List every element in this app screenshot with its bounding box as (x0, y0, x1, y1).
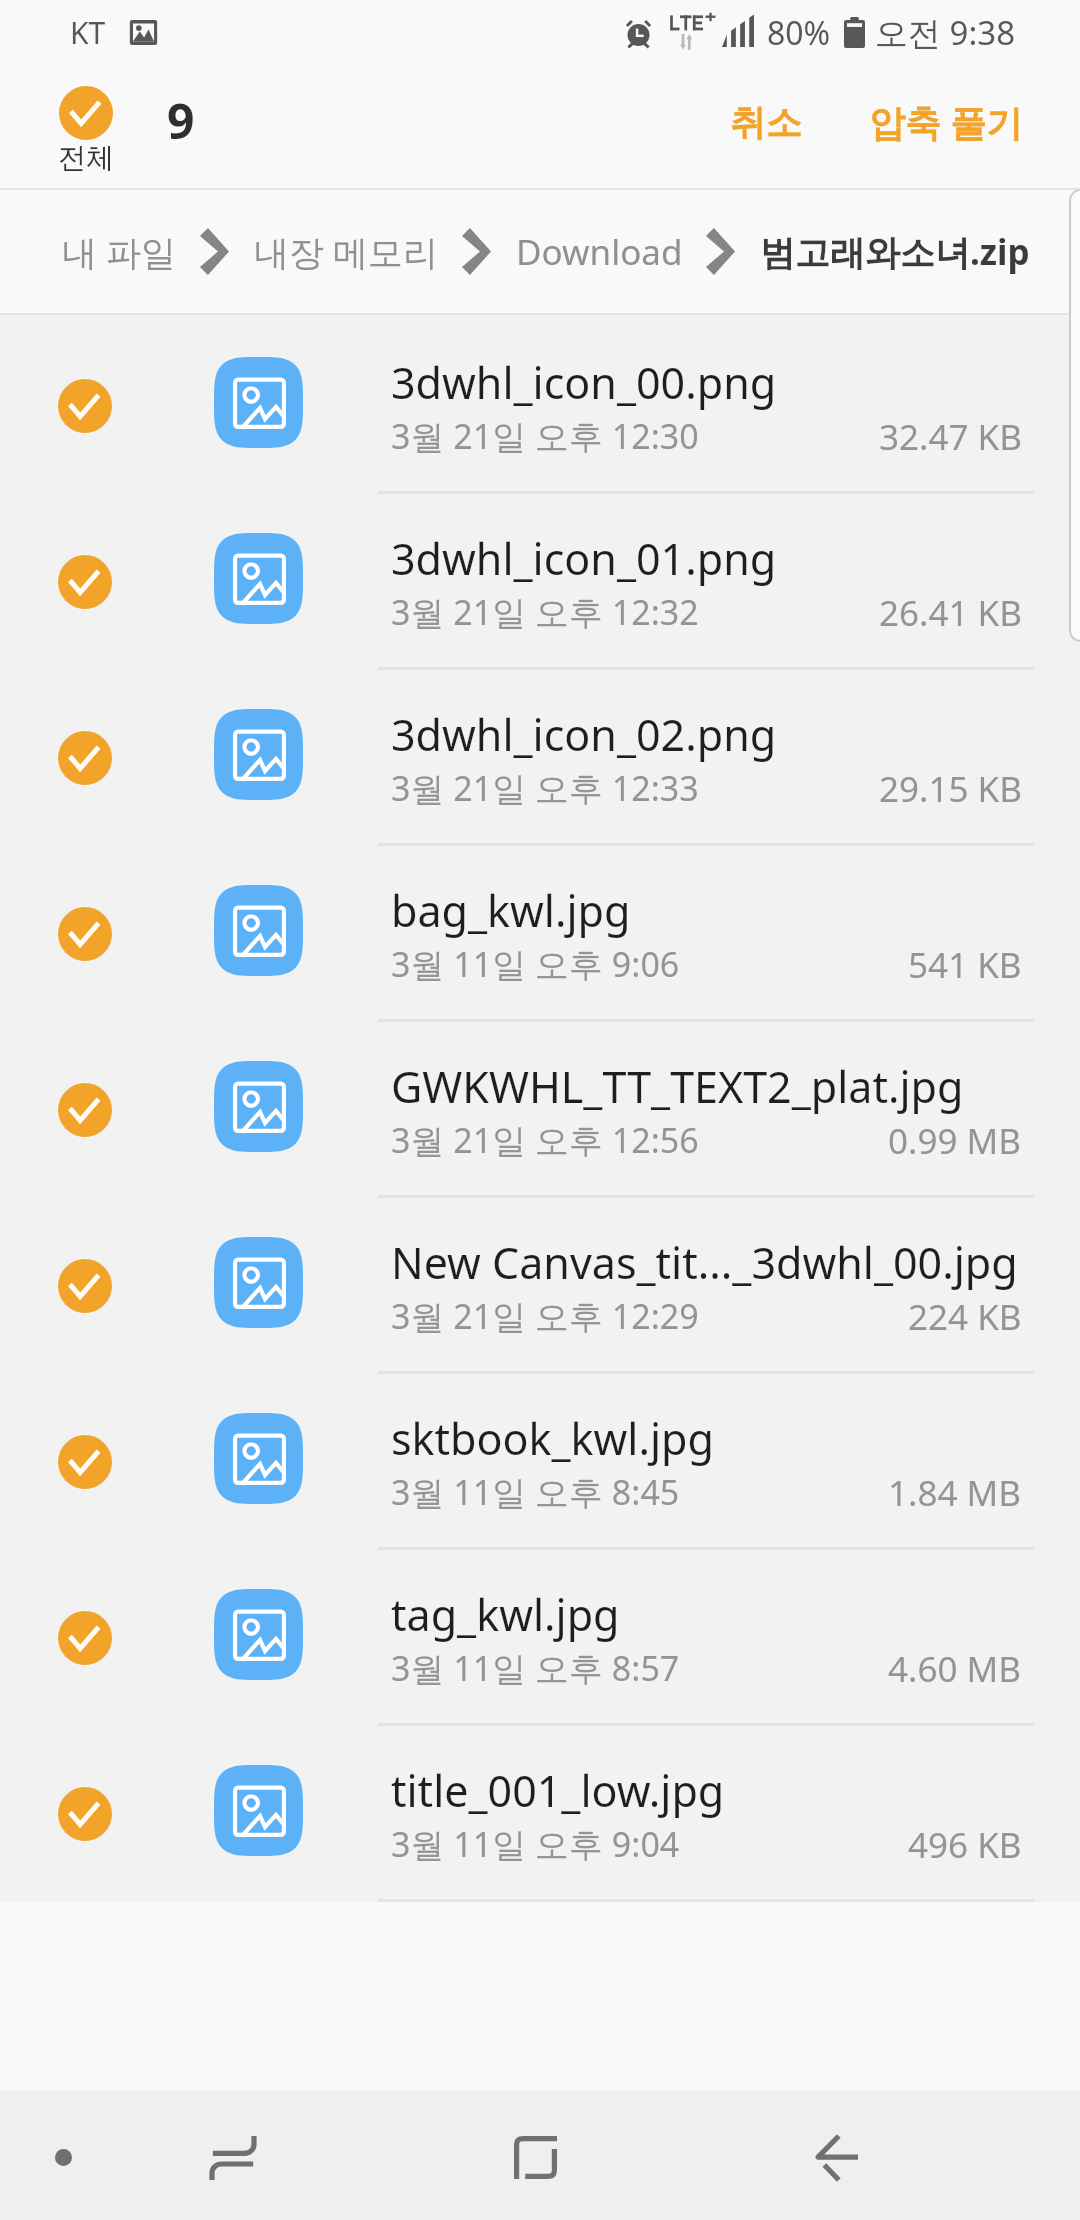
button[interactable]: Back (785, 2091, 891, 2220)
button[interactable]: 내 파일 (62, 228, 177, 276)
staticText: 4.60 MB (888, 1645, 1022, 1693)
button[interactable]: tag_kwl.jpg (0, 1550, 1080, 1726)
button[interactable]: 3dwhl_icon_01.png (0, 494, 1080, 670)
staticText: 3월 11일 오후 8:45 (391, 1469, 680, 1515)
staticText: 내장 메모리 (254, 228, 439, 276)
button[interactable]: Home (482, 2091, 588, 2220)
staticText: tag_kwl.jpg (391, 1585, 620, 1644)
staticText: title_001_low.jpg (391, 1761, 725, 1820)
staticText: New Canvas_tit..._3dwhl_00.jpg (391, 1233, 1018, 1292)
button[interactable]: title_001_low.jpg (0, 1726, 1080, 1902)
staticText: 압축 풀기 (869, 98, 1023, 147)
button[interactable]: GWKWHL_TT_TEXT2_plat.jpg (0, 1022, 1080, 1198)
staticText: 전체 (58, 140, 114, 175)
staticText: 32.47 KB (879, 413, 1022, 461)
staticText: 3dwhl_icon_00.png (391, 353, 777, 412)
button[interactable]: Menu (0, 2091, 126, 2220)
staticText: 내 파일 (62, 228, 177, 276)
staticText: 3월 11일 오후 9:06 (391, 941, 680, 987)
button[interactable]: 범고래와소녀.zip (760, 228, 1030, 276)
button[interactable]: 내장 메모리 (254, 228, 439, 276)
staticText: 80% (767, 11, 831, 55)
staticText: 9 (167, 88, 195, 153)
staticText: bag_kwl.jpg (391, 881, 631, 940)
staticText: Download (516, 228, 683, 276)
staticText: 3dwhl_icon_02.png (391, 705, 777, 764)
staticText: 3월 21일 오후 12:30 (391, 413, 699, 459)
staticText: 3월 21일 오후 12:33 (391, 765, 699, 811)
button[interactable]: 전체 (58, 86, 114, 177)
staticText: 취소 (730, 100, 802, 145)
staticText: GWKWHL_TT_TEXT2_plat.jpg (391, 1057, 964, 1116)
staticText: sktbook_kwl.jpg (391, 1409, 714, 1468)
staticText: 29.15 KB (879, 765, 1022, 813)
staticText: 3dwhl_icon_01.png (391, 529, 777, 588)
staticText: 0.99 MB (888, 1117, 1022, 1165)
staticText: 범고래와소녀.zip (760, 228, 1030, 276)
staticText: 3월 21일 오후 12:56 (391, 1117, 699, 1163)
staticText: 3월 21일 오후 12:32 (391, 589, 699, 635)
button[interactable]: 3dwhl_icon_02.png (0, 670, 1080, 846)
staticText: 오전 9:38 (875, 10, 1016, 55)
button[interactable]: New Canvas_tit..._3dwhl_00.jpg (0, 1198, 1080, 1374)
staticText: KT (70, 12, 106, 53)
staticText: 3월 11일 오후 8:57 (391, 1645, 680, 1691)
button[interactable]: bag_kwl.jpg (0, 846, 1080, 1022)
button[interactable]: 취소 (718, 90, 814, 155)
staticText: 3월 21일 오후 12:29 (391, 1293, 699, 1339)
staticText: 496 KB (908, 1821, 1022, 1869)
staticText: 26.41 KB (879, 589, 1022, 637)
button[interactable]: sktbook_kwl.jpg (0, 1374, 1080, 1550)
staticText: 541 KB (908, 941, 1022, 989)
button[interactable]: Download (516, 228, 683, 276)
staticText: 1.84 MB (888, 1469, 1022, 1517)
button[interactable]: Recent apps (180, 2091, 286, 2220)
staticText: 224 KB (908, 1293, 1022, 1341)
staticText: 3월 11일 오후 9:04 (391, 1821, 680, 1867)
button[interactable]: 3dwhl_icon_00.png (0, 318, 1080, 494)
button[interactable]: 압축 풀기 (857, 88, 1035, 157)
